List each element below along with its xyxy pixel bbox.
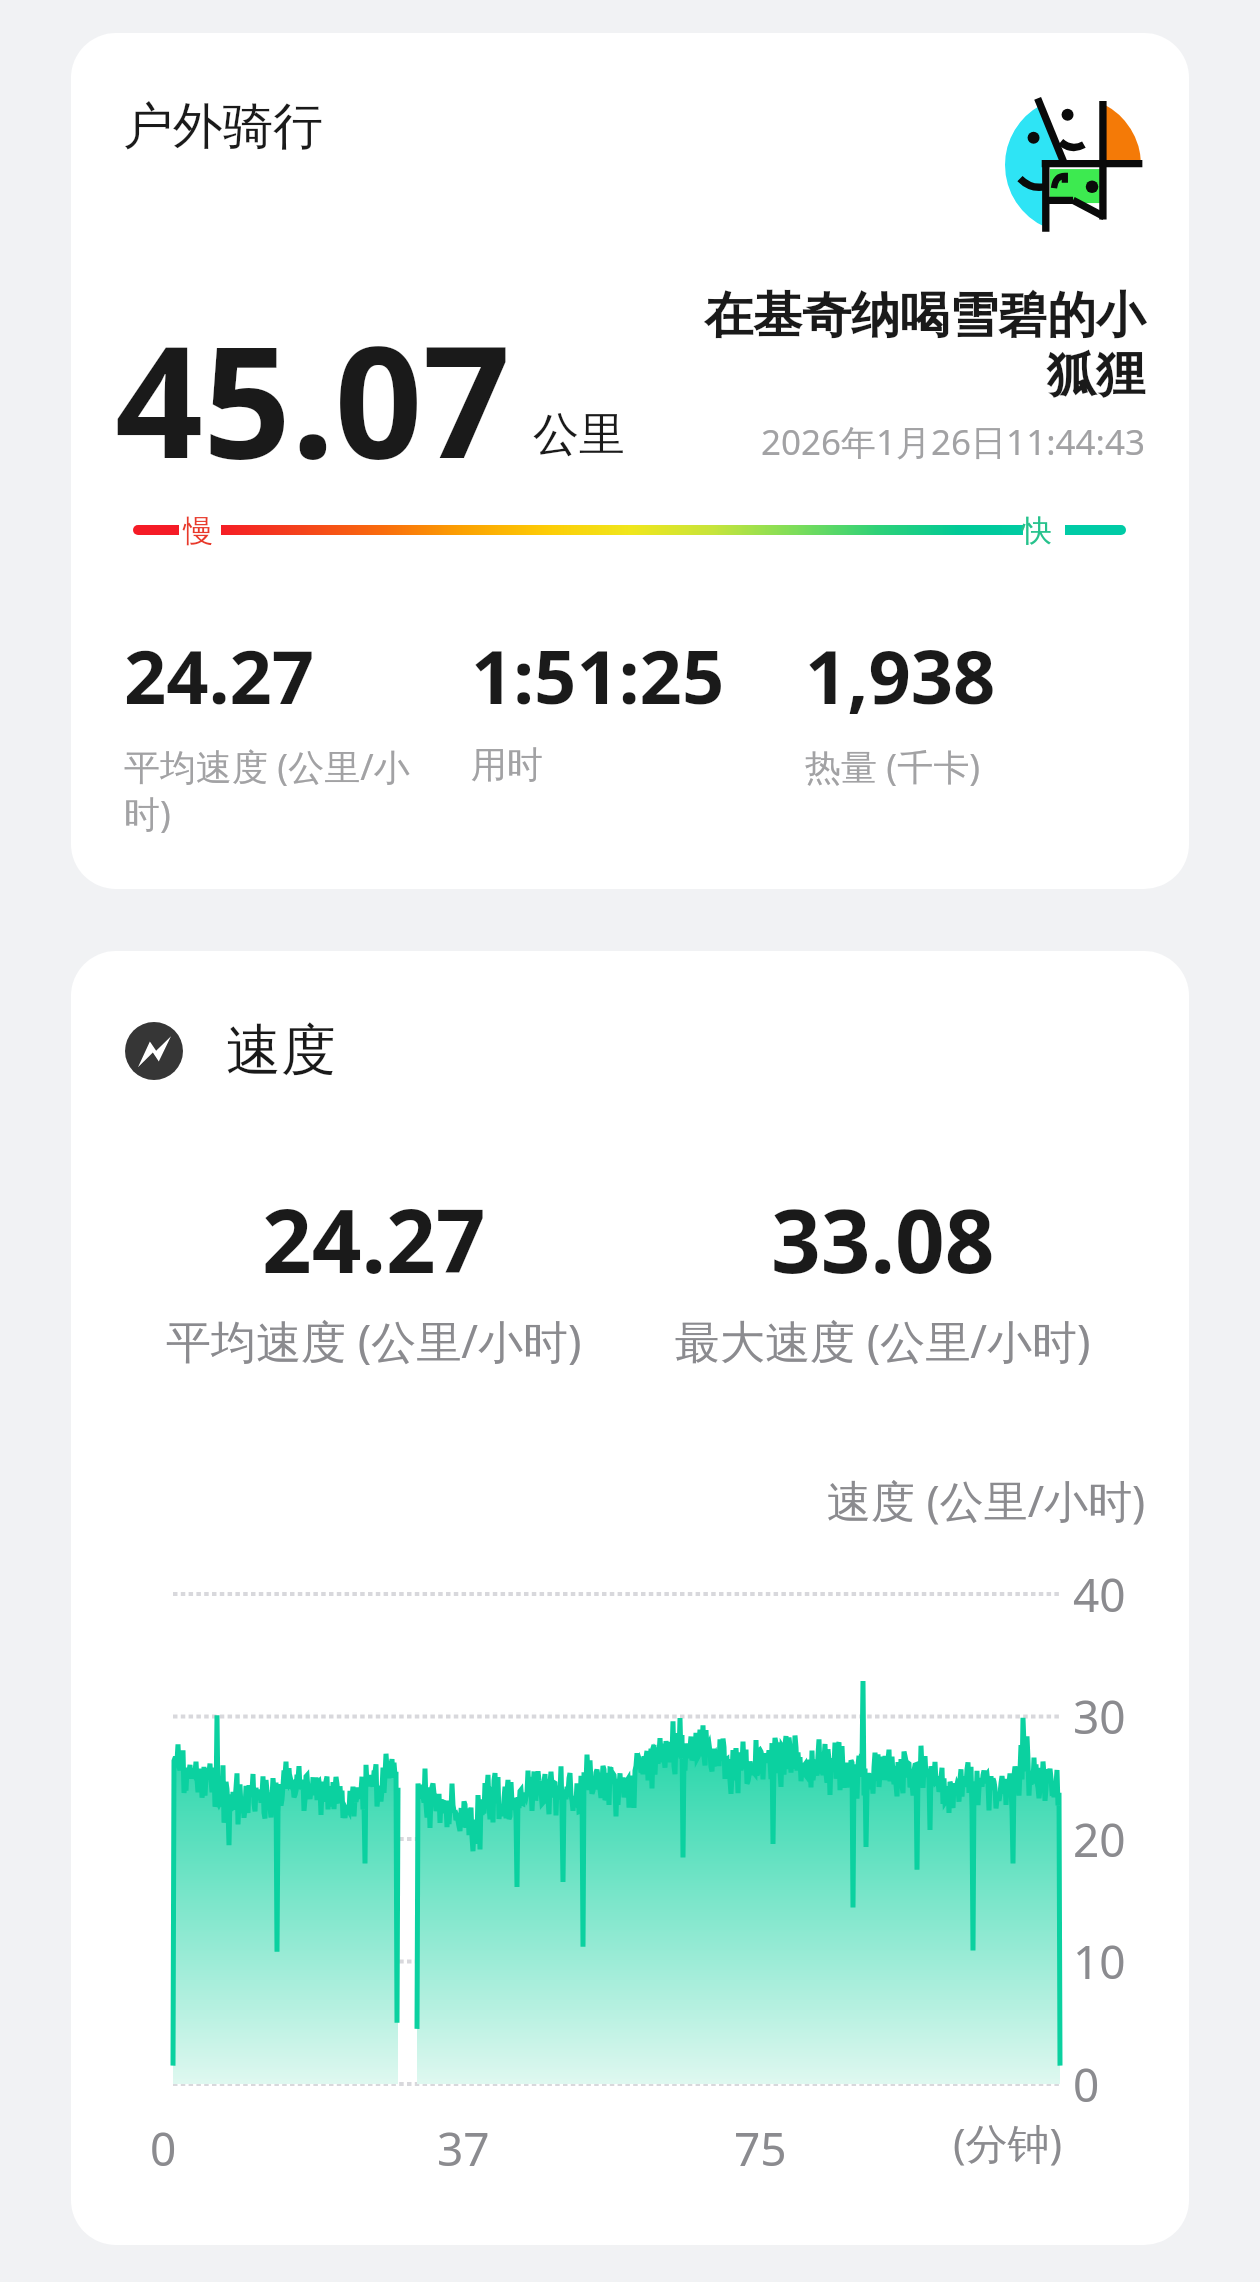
staticText: 0 <box>150 2117 177 2180</box>
staticText: 用时 <box>471 742 543 787</box>
staticText: 10 <box>1073 1930 1126 1993</box>
staticText: 2026年1月26日11:44:43 <box>760 418 1145 466</box>
button[interactable]: 速度 <box>71 951 1189 2245</box>
staticText: 户外骑行 <box>123 95 323 158</box>
staticText: 公里 <box>533 406 625 464</box>
staticText: 24.27 <box>262 1180 486 1298</box>
staticText: 慢 <box>183 512 213 550</box>
staticText: 平均速度 (公里/小 时) <box>124 742 410 837</box>
staticText: (分钟) <box>953 2114 1063 2171</box>
staticText: 速度 <box>226 1016 336 1085</box>
staticText: 速度 (公里/小时) <box>827 1470 1146 1530</box>
staticText: 在基奇纳喝雪碧的小狐狸 <box>700 285 1145 406</box>
button[interactable]: 户外骑行 <box>71 33 1189 889</box>
staticText: 1,938 <box>805 625 996 726</box>
staticText: 75 <box>734 2117 787 2180</box>
other: User avatar <box>1005 97 1141 233</box>
staticText: 快 <box>1022 512 1052 550</box>
staticText: 1:51:25 <box>471 625 725 726</box>
staticText: 40 <box>1073 1563 1126 1626</box>
staticText: 热量 (千卡) <box>805 742 980 791</box>
staticText: 37 <box>437 2117 490 2180</box>
staticText: 平均速度 (公里/小时) <box>166 1310 582 1371</box>
staticText: 30 <box>1073 1685 1126 1748</box>
staticText: 0 <box>1073 2053 1100 2116</box>
staticText: 最大速度 (公里/小时) <box>675 1310 1091 1371</box>
staticText: 45.07 <box>115 293 511 503</box>
staticText: 33.08 <box>771 1180 995 1298</box>
staticText: 24.27 <box>124 625 315 726</box>
staticText: 20 <box>1073 1808 1126 1871</box>
